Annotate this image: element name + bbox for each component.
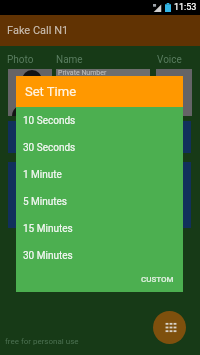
staticText: CUSTOM <box>141 275 174 284</box>
staticText: 15 Minutes <box>23 223 73 235</box>
button[interactable]: Voice <box>156 69 192 116</box>
button[interactable]: Fake Call N1 <box>0 15 200 46</box>
button[interactable]: 30 Seconds <box>16 134 183 161</box>
staticText: Name <box>56 54 83 66</box>
button[interactable]: 30 Minutes <box>16 242 183 269</box>
staticText: 30 Minutes <box>23 250 73 262</box>
staticText: Fake Call N1 <box>7 24 69 37</box>
button[interactable]: Private Number <box>56 69 150 78</box>
button[interactable]: Photo <box>8 69 52 116</box>
button[interactable]: 15 Minutes <box>16 215 183 242</box>
button[interactable]: Dialpad <box>153 311 186 344</box>
staticText: free for personal use <box>5 337 79 346</box>
button[interactable] <box>8 162 191 228</box>
staticText: 10 Seconds <box>23 115 76 127</box>
staticText: Set Time <box>25 84 77 99</box>
button[interactable]: 5 Minutes <box>16 188 183 215</box>
staticText: 11:53 <box>174 2 197 13</box>
button[interactable]: 10 Seconds <box>16 107 183 134</box>
button[interactable]: 1 Minute <box>16 161 183 188</box>
button[interactable] <box>8 121 191 153</box>
button[interactable]: CUSTOM <box>141 275 174 284</box>
staticText: Private Number <box>58 69 107 77</box>
staticText: Voice <box>157 54 182 66</box>
staticText: 1 Minute <box>23 169 62 181</box>
staticText: Photo <box>7 54 34 66</box>
staticText: 5 Minutes <box>23 196 68 208</box>
staticText: 30 Seconds <box>23 142 76 154</box>
